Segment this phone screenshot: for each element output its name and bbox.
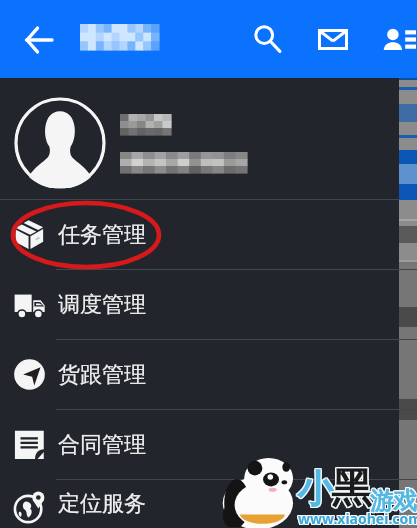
- staticText: 游: [369, 486, 393, 516]
- staticText: 小: [297, 465, 335, 513]
- staticText: 戏: [393, 487, 417, 517]
- button[interactable]: Messages: [306, 12, 360, 66]
- staticText: www.xiaohei.com: [297, 509, 417, 528]
- button[interactable]: Search: [240, 12, 294, 66]
- staticText: 戏: [394, 486, 417, 516]
- staticText: 游: [370, 486, 394, 516]
- staticText: www.xiaohei.com: [298, 508, 417, 527]
- button[interactable]: Contacts: [372, 12, 417, 66]
- staticText: 游: [369, 487, 393, 517]
- staticText: 小: [298, 465, 336, 513]
- button[interactable]: 调度管理: [0, 270, 399, 339]
- staticText: www.xiaohei.com: [299, 509, 417, 528]
- staticText: 小: [298, 466, 336, 514]
- staticText: 游: [371, 485, 395, 515]
- staticText: 小: [296, 464, 334, 512]
- staticText: 黑: [332, 464, 373, 516]
- staticText: 小: [296, 465, 334, 513]
- button[interactable]: 定位服务: [0, 480, 399, 528]
- staticText: 戏: [394, 485, 417, 515]
- staticText: 小: [296, 466, 334, 514]
- button[interactable]: [0, 78, 399, 199]
- staticText: www.xiaohei.com: [297, 510, 417, 528]
- staticText: 定位服务: [58, 490, 146, 518]
- button[interactable]: 合同管理: [0, 410, 399, 479]
- staticText: 游: [371, 486, 395, 516]
- staticText: 黑: [331, 463, 372, 515]
- staticText: 戏: [394, 487, 417, 517]
- staticText: 游: [370, 485, 394, 515]
- staticText: www.xiaohei.com: [299, 508, 417, 527]
- staticText: 游: [369, 485, 393, 515]
- button[interactable]: 任务管理: [0, 200, 399, 269]
- staticText: www.xiaohei.com: [297, 508, 417, 527]
- staticText: 任务管理: [58, 221, 146, 249]
- staticText: 调度管理: [58, 291, 146, 319]
- staticText: 戏: [392, 485, 416, 515]
- staticText: 小: [298, 464, 336, 512]
- staticText: 黑: [330, 463, 371, 515]
- staticText: 游: [370, 487, 394, 517]
- staticText: 戏: [392, 486, 416, 516]
- staticText: 黑: [331, 464, 372, 516]
- button[interactable]: 货跟管理: [0, 340, 399, 409]
- button[interactable]: Back: [12, 13, 66, 67]
- staticText: 戏: [393, 486, 417, 516]
- staticText: 戏: [392, 487, 416, 517]
- staticText: 合同管理: [58, 431, 146, 459]
- staticText: 黑: [332, 462, 373, 514]
- staticText: www.xiaohei.com: [298, 509, 417, 528]
- staticText: 黑: [332, 463, 373, 515]
- staticText: www.xiaohei.com: [299, 510, 417, 528]
- staticText: 黑: [330, 464, 371, 516]
- staticText: 戏: [393, 485, 417, 515]
- staticText: www.xiaohei.com: [298, 510, 417, 528]
- staticText: 游: [371, 487, 395, 517]
- staticText: 货跟管理: [58, 361, 146, 389]
- staticText: 小: [297, 466, 335, 514]
- staticText: 黑: [330, 462, 371, 514]
- staticText: 小: [297, 464, 335, 512]
- staticText: 黑: [331, 462, 372, 514]
